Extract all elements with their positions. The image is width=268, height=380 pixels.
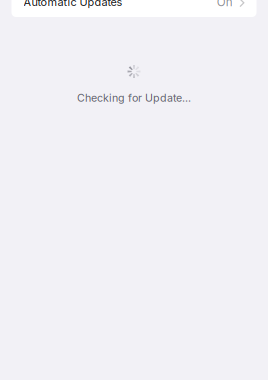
staticText: Checking for Update... [77, 91, 191, 104]
staticText: Automatic Updates [23, 0, 122, 9]
staticText: On [217, 0, 233, 9]
button[interactable]: Automatic Updates [11, 0, 256, 30]
